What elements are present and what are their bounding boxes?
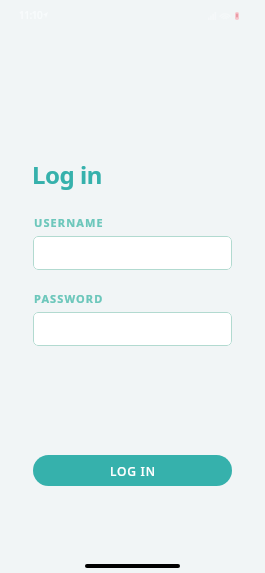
- staticText: LOG IN: [110, 463, 156, 479]
- button[interactable]: Username input: [33, 236, 232, 270]
- button[interactable]: LOG IN: [33, 455, 232, 486]
- staticText: USERNAME: [34, 215, 104, 230]
- staticText: Log in: [32, 158, 102, 191]
- button[interactable]: Password input: [33, 312, 232, 346]
- other: Battery: [235, 12, 239, 20]
- staticText: PASSWORD: [34, 291, 104, 306]
